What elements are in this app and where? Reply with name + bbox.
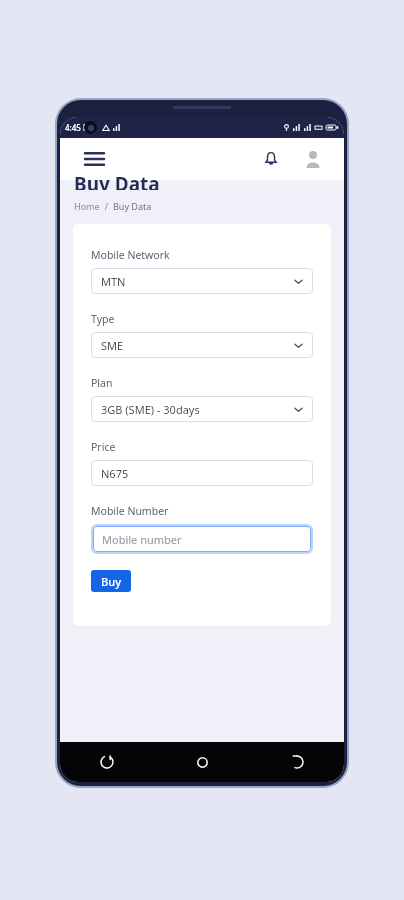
staticText: Buy Data	[74, 171, 160, 190]
staticText: Mobile Number	[91, 504, 169, 518]
staticText: Home	[74, 200, 100, 212]
staticText: /	[100, 200, 113, 212]
button[interactable]: Mobile number	[93, 526, 311, 552]
button[interactable]: Notifications	[258, 146, 284, 172]
staticText: Price	[91, 440, 116, 454]
staticText: Plan	[91, 376, 113, 390]
staticText: Mobile Network	[91, 248, 170, 262]
staticText: SME	[101, 338, 124, 353]
staticText: MTN	[101, 274, 126, 289]
button[interactable]: Open menu	[80, 145, 108, 173]
button[interactable]: N675	[91, 460, 313, 486]
staticText: 3GB (SME) - 30days	[101, 402, 200, 417]
staticText: Buy	[101, 574, 121, 589]
button[interactable]: Home	[189, 749, 215, 775]
staticText: N675	[101, 466, 129, 481]
button[interactable]: Profile	[300, 146, 326, 172]
button[interactable]: SME	[91, 332, 313, 358]
button[interactable]: 3GB (SME) - 30days	[91, 396, 313, 422]
staticText: Mobile number	[102, 532, 182, 547]
staticText: 4:45 PM	[65, 122, 96, 133]
button[interactable]: Recent apps	[94, 749, 120, 775]
staticText: Buy Data	[113, 200, 152, 212]
button[interactable]: Back	[284, 749, 310, 775]
staticText: Type	[91, 312, 115, 326]
button[interactable]: MTN	[91, 268, 313, 294]
button[interactable]: Buy	[91, 570, 131, 592]
